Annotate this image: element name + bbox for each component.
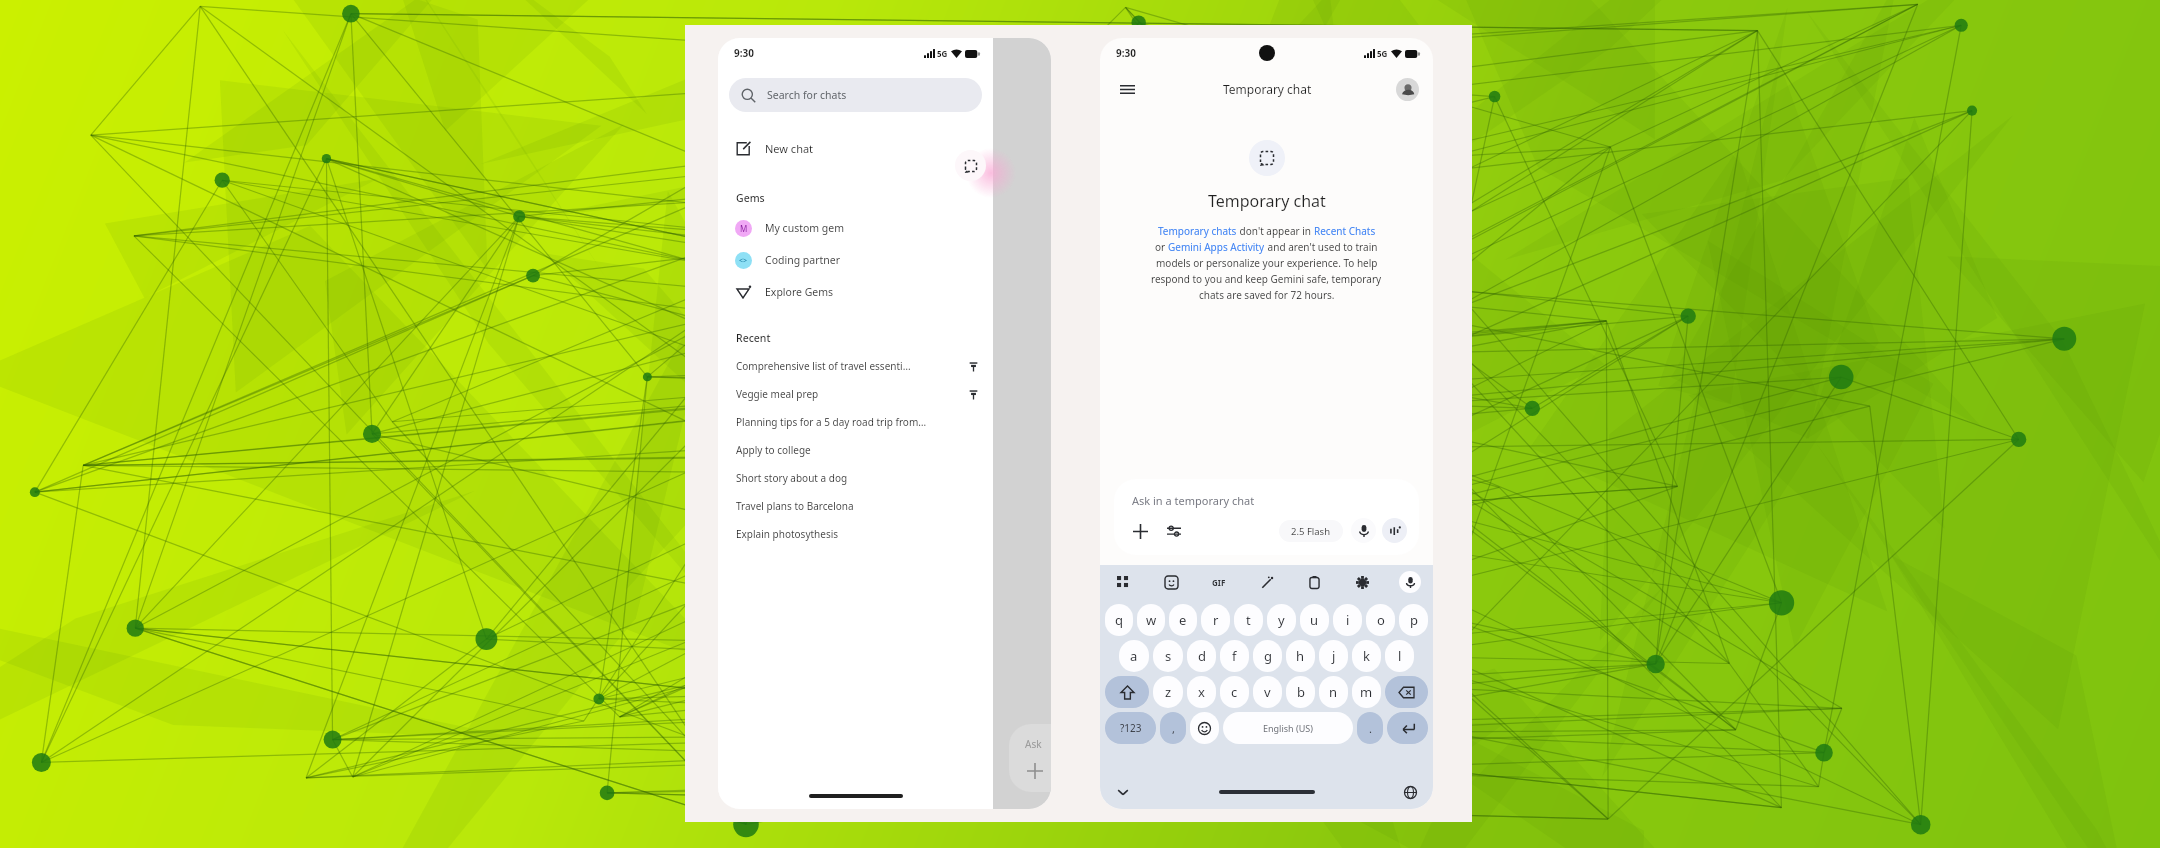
button[interactable]: Travel plans to Barcelona xyxy=(718,492,993,520)
button[interactable]: gif xyxy=(1208,571,1230,593)
staticText: Ask xyxy=(1025,737,1042,751)
button[interactable]: English (US) xyxy=(1223,712,1353,744)
button[interactable]: Apply to college xyxy=(718,436,993,464)
staticText: Temporary chats xyxy=(1158,224,1237,238)
button[interactable]: Veggie meal prep xyxy=(718,380,993,408)
staticText: o xyxy=(1377,611,1385,629)
button[interactable]: b xyxy=(1286,676,1315,708)
staticText: Ask in a temporary chat xyxy=(1132,493,1255,508)
staticText: w xyxy=(1146,611,1157,629)
button[interactable]: Change language xyxy=(1399,781,1421,803)
staticText: p xyxy=(1410,611,1418,629)
button[interactable]: , xyxy=(1160,712,1186,744)
button[interactable] xyxy=(1387,712,1428,744)
button[interactable]: n xyxy=(1319,676,1348,708)
button[interactable]: h xyxy=(1286,640,1315,672)
staticText: <> xyxy=(739,256,748,266)
button[interactable]: s xyxy=(1153,640,1183,672)
button[interactable]: . xyxy=(1357,712,1383,744)
staticText: s xyxy=(1165,647,1172,665)
staticText: k xyxy=(1363,647,1370,665)
staticText: Comprehensive list of travel essenti… xyxy=(736,359,968,373)
button[interactable]: j xyxy=(1319,640,1348,672)
staticText: f xyxy=(1232,647,1237,665)
staticText: v xyxy=(1264,683,1271,701)
button[interactable]: settings xyxy=(1351,571,1373,593)
button[interactable]: q xyxy=(1105,604,1133,636)
button[interactable] xyxy=(1105,676,1149,708)
button[interactable]: Hide keyboard xyxy=(1112,781,1134,803)
staticText: Explore Gems xyxy=(765,285,834,299)
button[interactable]: sticker xyxy=(1160,571,1182,593)
button[interactable] xyxy=(1385,676,1428,708)
button[interactable]: y xyxy=(1267,604,1296,636)
button[interactable]: i xyxy=(1333,604,1362,636)
staticText: 5G xyxy=(1377,48,1388,59)
button[interactable]: Short story about a dog xyxy=(718,464,993,492)
staticText: Planning tips for a 5 day road trip from… xyxy=(736,415,979,429)
button[interactable]: Comprehensive list of travel essenti… xyxy=(718,352,993,380)
button[interactable]: d xyxy=(1187,640,1216,672)
staticText: Recent Chats xyxy=(1314,224,1376,238)
staticText: Recent xyxy=(736,331,771,345)
button[interactable]: Menu xyxy=(1114,76,1140,102)
button[interactable]: a xyxy=(1119,640,1149,672)
staticText: Gems xyxy=(736,191,765,205)
button[interactable]: magic xyxy=(1256,571,1278,593)
button[interactable]: c xyxy=(1220,676,1249,708)
button[interactable]: M xyxy=(718,212,993,244)
button[interactable]: v xyxy=(1253,676,1282,708)
button[interactable]: Explain photosythesis xyxy=(718,520,993,548)
staticText: Temporary chat xyxy=(1208,190,1326,212)
button[interactable]: m xyxy=(1352,676,1381,708)
staticText: q xyxy=(1115,611,1123,629)
staticText: Apply to college xyxy=(736,443,979,457)
staticText: respond to you and keep Gemini safe, tem… xyxy=(1151,272,1382,286)
staticText: z xyxy=(1165,683,1172,701)
button[interactable]: e xyxy=(1169,604,1197,636)
staticText: e xyxy=(1179,611,1187,629)
staticText: Travel plans to Barcelona xyxy=(736,499,979,513)
staticText: i xyxy=(1346,611,1350,629)
button[interactable]: Tools xyxy=(1162,519,1186,543)
button[interactable]: Voice input xyxy=(1351,518,1376,543)
button[interactable]: Account xyxy=(1396,78,1419,101)
button[interactable]: Emoji xyxy=(1190,712,1219,744)
button[interactable]: u xyxy=(1300,604,1329,636)
button[interactable]: 2.5 Flash xyxy=(1279,520,1343,542)
staticText: 5G xyxy=(937,48,948,59)
button[interactable]: o xyxy=(1366,604,1395,636)
button[interactable]: x xyxy=(1187,676,1216,708)
button[interactable]: New chat xyxy=(718,132,993,164)
staticText: don't appear in xyxy=(1237,224,1314,238)
button[interactable]: clipboard xyxy=(1303,571,1325,593)
button[interactable]: Voice typing xyxy=(1399,571,1421,593)
button[interactable]: r xyxy=(1201,604,1230,636)
staticText: and aren't used to train xyxy=(1265,240,1378,254)
button[interactable]: p xyxy=(1399,604,1428,636)
button[interactable]: Add xyxy=(1128,519,1152,543)
staticText: m xyxy=(1360,683,1373,701)
button[interactable]: w xyxy=(1137,604,1165,636)
button[interactable]: Planning tips for a 5 day road trip from… xyxy=(718,408,993,436)
button[interactable]: Live xyxy=(1382,518,1407,543)
button[interactable]: <> xyxy=(718,244,993,276)
button[interactable]: Temporary chat xyxy=(955,150,986,181)
button[interactable]: k xyxy=(1352,640,1381,672)
button[interactable]: l xyxy=(1385,640,1414,672)
staticText: Veggie meal prep xyxy=(736,387,968,401)
staticText: a xyxy=(1130,647,1138,665)
button[interactable]: ?123 xyxy=(1105,712,1156,744)
button[interactable]: g xyxy=(1253,640,1282,672)
button[interactable]: t xyxy=(1234,604,1263,636)
staticText: d xyxy=(1198,647,1206,665)
staticText: Explain photosythesis xyxy=(736,527,979,541)
staticText: GIF xyxy=(1212,577,1226,588)
staticText: models or personalize your experience. T… xyxy=(1156,256,1378,270)
button[interactable]: grid xyxy=(1112,571,1134,593)
button[interactable]: f xyxy=(1220,640,1249,672)
button[interactable]: Explore Gems xyxy=(718,276,993,308)
button[interactable]: Ask in a temporary chat xyxy=(1114,479,1419,555)
button[interactable]: Search for chats xyxy=(729,78,982,112)
button[interactable]: z xyxy=(1153,676,1183,708)
